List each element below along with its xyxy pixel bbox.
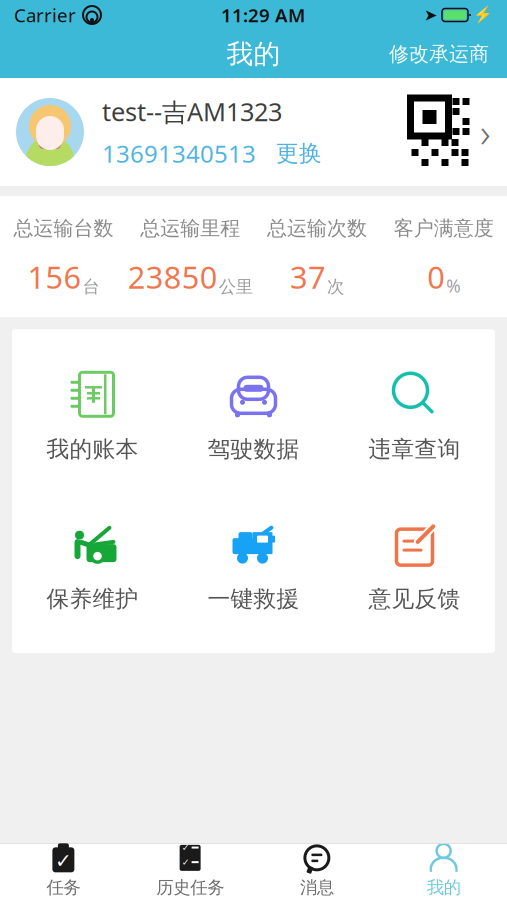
- staticText: 我的: [427, 877, 461, 898]
- staticText: 37: [290, 257, 326, 297]
- staticText: 156: [27, 257, 81, 297]
- button[interactable]: 一键救援: [173, 513, 334, 619]
- staticText: 驾驶数据: [207, 435, 299, 463]
- button[interactable]: 违章查询: [334, 363, 495, 469]
- staticText: 我的账本: [46, 435, 138, 463]
- staticText: ✓: [182, 842, 190, 853]
- staticText: 意见反馈: [368, 585, 460, 613]
- button[interactable]: 我的账本: [12, 363, 173, 469]
- staticText: 修改承运商: [389, 42, 489, 66]
- staticText: ✓: [182, 857, 190, 867]
- staticText: 任务: [46, 877, 80, 898]
- button[interactable]: 我的: [380, 838, 507, 900]
- button[interactable]: 驾驶数据: [173, 363, 334, 469]
- staticText: 23850: [128, 257, 218, 297]
- staticText: 公里: [219, 276, 253, 297]
- staticText: 总运输台数: [13, 216, 113, 241]
- staticText: 台: [82, 276, 99, 297]
- staticText: 一键救援: [207, 585, 299, 613]
- staticText: 总运输次数: [267, 216, 367, 241]
- staticText: 我的: [226, 38, 280, 70]
- staticText: ⚡: [473, 6, 493, 24]
- staticText: 客户满意度: [394, 216, 494, 241]
- staticText: 历史任务: [156, 877, 224, 898]
- button[interactable]: 保养维护: [12, 513, 173, 619]
- staticText: test--吉AM1323: [102, 95, 282, 128]
- staticText: 保养维护: [46, 585, 138, 613]
- button[interactable]: 修改承运商: [379, 34, 499, 74]
- staticText: ➤: [424, 6, 437, 24]
- staticText: ✓: [55, 849, 72, 872]
- staticText: 13691340513: [102, 137, 256, 169]
- staticText: 总运输里程: [140, 216, 240, 241]
- staticText: 11:29 AM: [221, 3, 305, 27]
- button[interactable]: test--吉AM1323: [0, 78, 507, 186]
- staticText: 消息: [300, 877, 334, 898]
- button[interactable]: ✓: [127, 838, 254, 900]
- staticText: 0: [427, 257, 445, 297]
- staticText: %: [446, 274, 460, 297]
- button[interactable]: 意见反馈: [334, 513, 495, 619]
- staticText: 更换: [276, 139, 322, 167]
- staticText: ›: [480, 105, 491, 158]
- button[interactable]: 消息: [253, 838, 380, 900]
- staticText: Carrier: [14, 3, 76, 27]
- staticText: 违章查询: [368, 435, 460, 463]
- button[interactable]: ✓: [0, 838, 127, 900]
- staticText: 次: [327, 276, 344, 297]
